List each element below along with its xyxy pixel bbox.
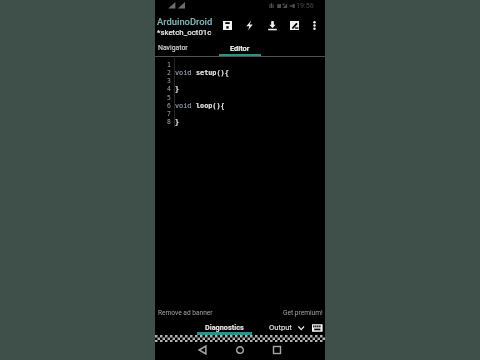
staticText: 5 [167, 94, 171, 101]
button[interactable]: Recent apps [269, 342, 285, 358]
staticText: 6 [167, 102, 171, 109]
staticText: Remove ad banner [158, 309, 213, 317]
staticText: Editor [230, 44, 250, 53]
staticText: 19:56 [296, 1, 314, 9]
staticText: *sketch_oct01c [157, 28, 212, 37]
staticText: 7 [167, 110, 171, 117]
staticText: Get premium! [283, 309, 323, 317]
button[interactable]: Diagnostics [197, 319, 252, 335]
staticText: 8 [167, 118, 171, 125]
staticText: Navigator [158, 44, 188, 52]
button[interactable]: Edit [289, 14, 300, 37]
button[interactable]: Save [222, 14, 233, 37]
staticText: 3 [167, 77, 171, 84]
button[interactable]: Remove ad banner [156, 305, 218, 317]
button[interactable]: Editor [219, 40, 261, 56]
button[interactable]: Get premium! [281, 305, 325, 317]
staticText: 4 [167, 85, 171, 92]
button[interactable]: Home [232, 342, 248, 358]
button[interactable]: Output [265, 319, 307, 335]
button[interactable]: Verify [244, 14, 255, 37]
staticText: void [175, 69, 196, 77]
button[interactable]: Navigator [155, 40, 219, 56]
staticText: } [175, 118, 180, 126]
staticText: Output [269, 323, 292, 332]
button[interactable]: Keyboard [310, 321, 325, 335]
staticText: Diagnostics [205, 323, 244, 332]
staticText: 1 [167, 61, 171, 68]
staticText: loop(){ [196, 102, 225, 110]
button[interactable]: Upload [267, 14, 278, 37]
staticText: } [175, 85, 180, 93]
button[interactable]: Back [195, 342, 211, 358]
staticText: setup(){ [196, 69, 229, 77]
staticText: 2 [167, 69, 171, 76]
staticText: void [175, 102, 196, 110]
staticText: ArduinoDroid [157, 16, 213, 27]
button[interactable]: More options [309, 14, 320, 37]
